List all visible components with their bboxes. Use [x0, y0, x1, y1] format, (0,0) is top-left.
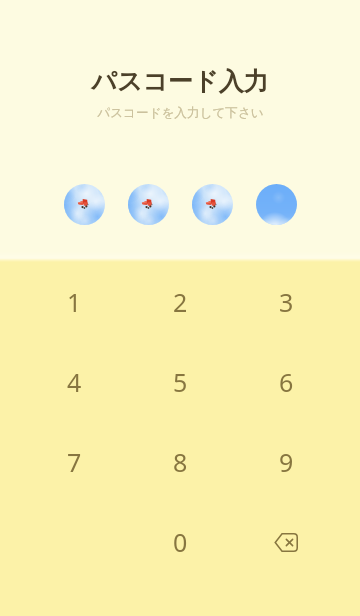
- button[interactable]: Empty slot: [256, 184, 297, 225]
- button[interactable]: 2: [127, 262, 233, 342]
- staticText: 2: [173, 285, 188, 319]
- button[interactable]: 4: [21, 342, 127, 422]
- button[interactable]: 0: [127, 502, 233, 582]
- staticText: 6: [279, 365, 294, 399]
- other: Backspace: [274, 533, 298, 552]
- staticText: 4: [67, 365, 82, 399]
- button[interactable]: Entered digit: [128, 184, 169, 225]
- button[interactable]: Entered digit: [192, 184, 233, 225]
- staticText: 5: [173, 365, 188, 399]
- staticText: パスコード入力: [91, 66, 269, 97]
- staticText: 0: [173, 525, 188, 559]
- button[interactable]: 5: [127, 342, 233, 422]
- staticText: 3: [279, 285, 294, 319]
- button[interactable]: Entered digit: [64, 184, 105, 225]
- button[interactable]: Backspace: [233, 502, 339, 582]
- staticText: 8: [173, 445, 188, 479]
- button[interactable]: 1: [21, 262, 127, 342]
- button[interactable]: 3: [233, 262, 339, 342]
- button[interactable]: 9: [233, 422, 339, 502]
- staticText: 1: [67, 285, 82, 319]
- staticText: 7: [67, 445, 82, 479]
- button[interactable]: 7: [21, 422, 127, 502]
- button[interactable]: 6: [233, 342, 339, 422]
- button[interactable]: 8: [127, 422, 233, 502]
- staticText: パスコードを入力して下さい: [97, 105, 264, 121]
- staticText: 9: [279, 445, 294, 479]
